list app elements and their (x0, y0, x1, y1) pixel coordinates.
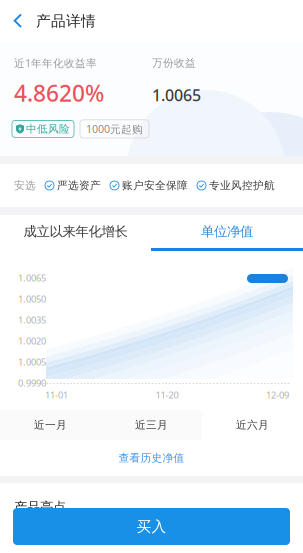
staticText: 产品亮点 (14, 499, 66, 515)
staticText: 万份收益 (152, 56, 196, 69)
staticText: 单位净值 (201, 223, 253, 240)
staticText: 11-01 (45, 389, 68, 401)
button[interactable]: 买入 (13, 508, 290, 545)
staticText: 严选资产 (57, 179, 101, 192)
staticText: 1.0065 (18, 272, 46, 284)
staticText: 买入 (136, 517, 166, 535)
staticText: 1.0020 (18, 335, 46, 347)
staticText: 近六月 (236, 418, 269, 431)
staticText: 产品详情 (36, 12, 96, 30)
button[interactable]: 返回 (0, 0, 36, 42)
staticText: 近一月 (34, 418, 67, 431)
button[interactable]: 查看历史净值 (0, 440, 303, 476)
button[interactable]: 近三月 (101, 410, 202, 440)
staticText: 1.0065 (152, 84, 201, 106)
staticText: 0.9990 (18, 377, 46, 389)
staticText: 中低风险 (26, 122, 70, 135)
staticText: 账户安全保障 (122, 179, 188, 192)
staticText: 成立以来年化增长 (23, 223, 127, 240)
button[interactable]: 单位净值 (151, 215, 303, 251)
staticText: 专业风控护航 (209, 179, 275, 192)
staticText: 近1年年化收益率 (14, 56, 97, 70)
button[interactable]: 成立以来年化增长 (0, 215, 151, 251)
staticText: 1.0005 (18, 356, 46, 368)
button[interactable]: 近六月 (202, 410, 303, 440)
staticText: 4.8620% (14, 78, 104, 108)
staticText: 近三月 (135, 418, 168, 431)
staticText: 1000元起购 (86, 122, 143, 136)
staticText: 12-09 (266, 389, 289, 401)
staticText: 1.0050 (18, 293, 46, 305)
staticText: 11-20 (155, 389, 178, 401)
staticText: 查看历史净值 (118, 451, 184, 464)
button[interactable]: 近一月 (0, 410, 101, 440)
staticText: 1.0035 (18, 314, 46, 326)
staticText: 安选 (14, 179, 36, 192)
